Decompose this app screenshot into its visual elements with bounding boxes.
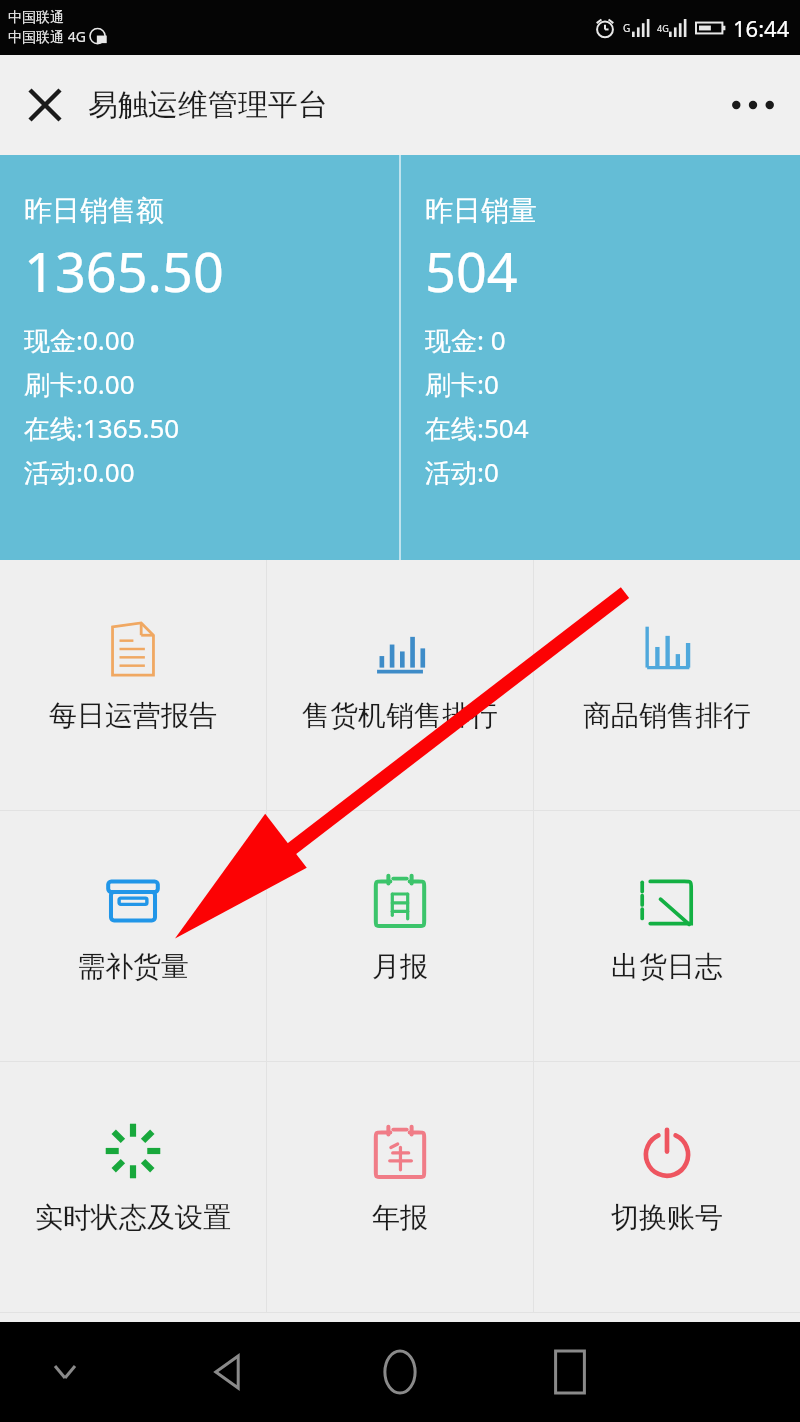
button[interactable]: 每日运营报告	[0, 560, 266, 810]
staticText: 需补货量	[77, 949, 189, 984]
staticText: 实时状态及设置	[35, 1200, 231, 1235]
staticText: 在线:1365.50	[24, 410, 180, 446]
staticText: 月报	[372, 949, 428, 984]
staticText: 中国联通 4G	[8, 27, 86, 46]
staticText: 16:44	[733, 13, 790, 43]
staticText: 出货日志	[611, 949, 723, 984]
staticText: 504	[425, 234, 518, 308]
button[interactable]: More options	[724, 76, 782, 134]
staticText: 现金:0.00	[24, 322, 135, 358]
button[interactable]: 昨日销量	[401, 155, 800, 560]
button[interactable]: Close	[22, 82, 68, 128]
staticText: 每日运营报告	[49, 698, 217, 733]
staticText: 商品销售排行	[583, 698, 751, 733]
button[interactable]: Recent apps	[535, 1337, 605, 1407]
button[interactable]: 需补货量	[0, 811, 266, 1061]
staticText: 活动:0.00	[24, 454, 135, 490]
staticText: 在线:504	[425, 410, 529, 446]
staticText: 售货机销售排行	[302, 698, 498, 733]
button[interactable]: 商品销售排行	[534, 560, 800, 810]
button[interactable]: 月报	[267, 811, 533, 1061]
button[interactable]: 实时状态及设置	[0, 1062, 266, 1312]
button[interactable]: 昨日销售额	[0, 155, 399, 560]
staticText: 中国联通	[8, 9, 64, 27]
button[interactable]: Hide keyboard	[38, 1345, 92, 1399]
staticText: 昨日销售额	[24, 193, 164, 228]
staticText: G	[623, 21, 631, 35]
staticText: 昨日销量	[425, 193, 537, 228]
button[interactable]: 切换账号	[534, 1062, 800, 1312]
staticText: 易触运维管理平台	[88, 86, 328, 124]
staticText: 4G	[657, 22, 669, 34]
button[interactable]: 出货日志	[534, 811, 800, 1061]
staticText: 活动:0	[425, 454, 499, 490]
staticText: 刷卡:0.00	[24, 366, 135, 402]
staticText: 1365.50	[24, 234, 224, 308]
staticText: 现金: 0	[425, 322, 506, 358]
button[interactable]: 售货机销售排行	[267, 560, 533, 810]
button[interactable]: Home	[365, 1337, 435, 1407]
button[interactable]: 年报	[267, 1062, 533, 1312]
staticText: 年报	[372, 1200, 428, 1235]
staticText: 切换账号	[611, 1200, 723, 1235]
button[interactable]: Back	[192, 1337, 262, 1407]
staticText: 刷卡:0	[425, 366, 499, 402]
